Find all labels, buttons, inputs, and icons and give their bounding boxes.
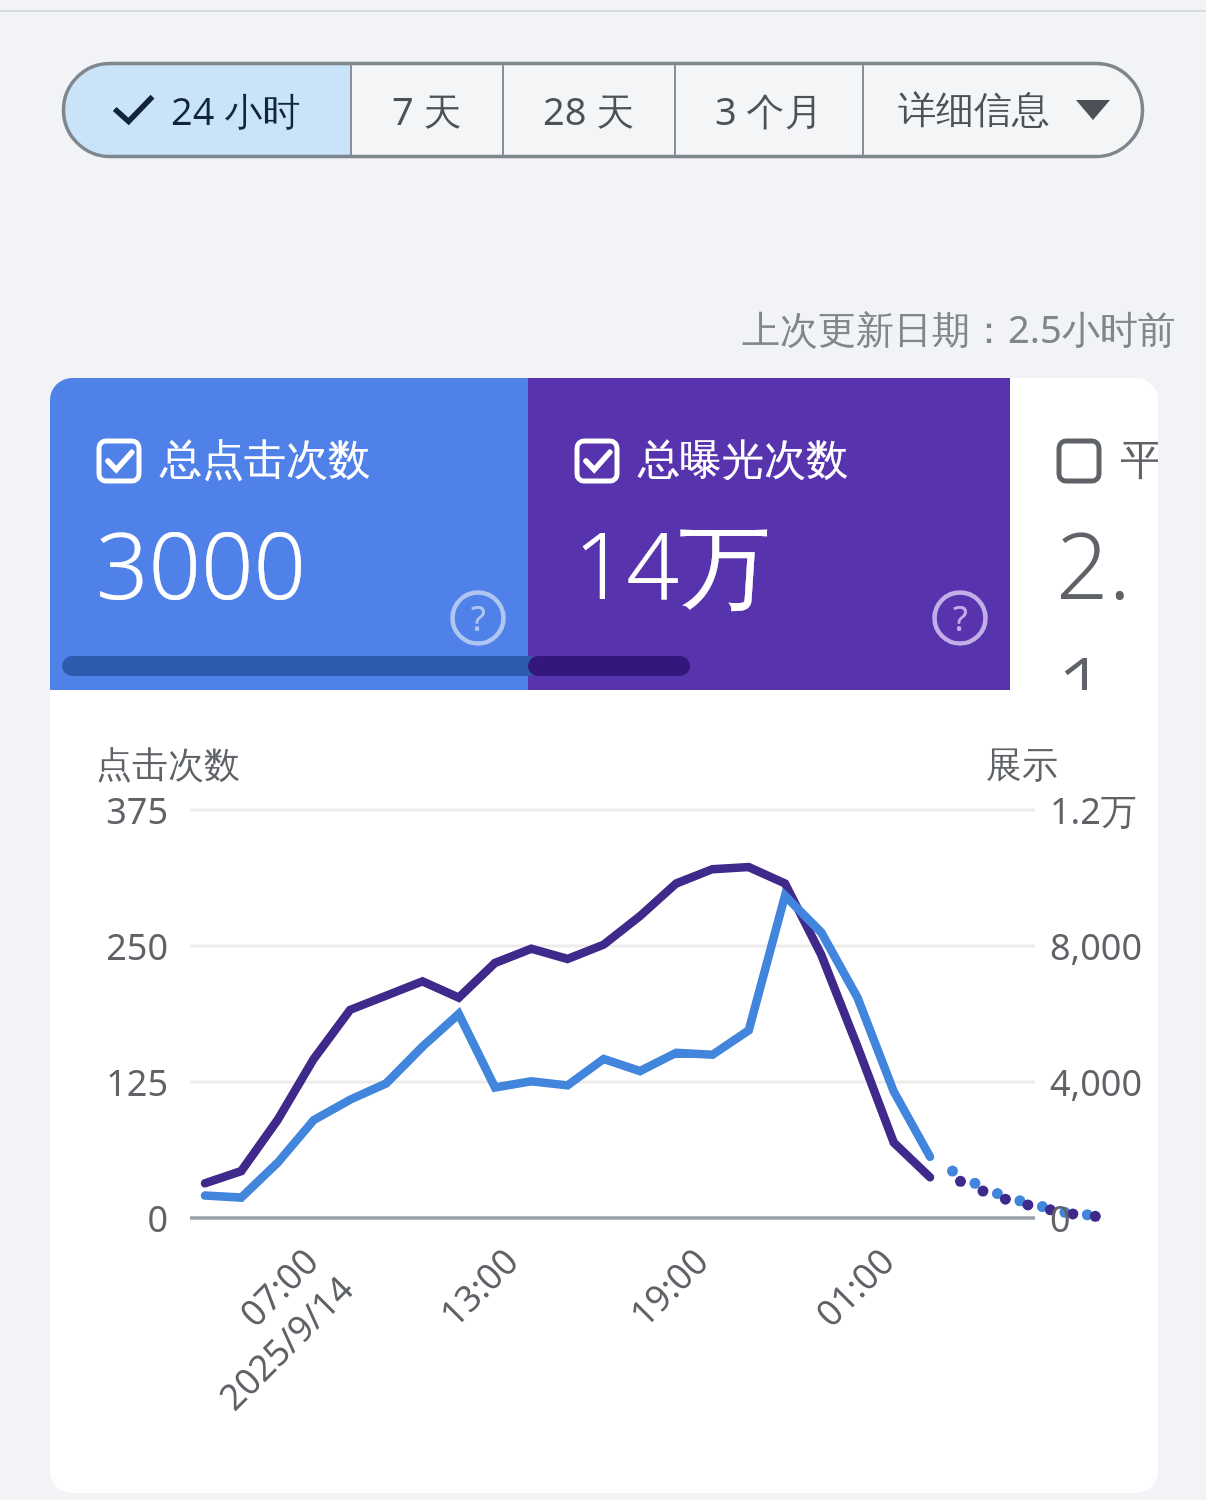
- button[interactable]: 7 天: [352, 62, 502, 158]
- staticText: 01:00: [804, 1236, 905, 1337]
- staticText: 24 小时: [171, 84, 301, 136]
- button[interactable]: 3 个月: [676, 62, 862, 158]
- button[interactable]: 帮助: [450, 590, 506, 646]
- staticText: 125: [50, 1058, 168, 1107]
- staticText: 19:00: [618, 1236, 719, 1337]
- button[interactable]: 总点击次数: [50, 378, 528, 690]
- button[interactable]: 24 小时: [62, 62, 350, 158]
- button[interactable]: 帮助: [932, 590, 988, 646]
- staticText: 14万: [574, 501, 772, 627]
- staticText: 平: [1120, 434, 1158, 487]
- staticText: 4,000: [1050, 1058, 1143, 1107]
- staticText: 250: [50, 922, 168, 971]
- staticText: 展示: [986, 742, 1058, 787]
- staticText: 7 天: [392, 84, 462, 136]
- button[interactable]: 详细信息: [864, 62, 1144, 158]
- staticText: 3 个月: [715, 84, 823, 136]
- staticText: 2.1: [1056, 501, 1158, 690]
- staticText: ?: [471, 595, 486, 641]
- button[interactable]: 28 天: [504, 62, 674, 158]
- staticText: 8,000: [1050, 922, 1143, 971]
- staticText: 点击次数: [96, 742, 240, 787]
- staticText: 3000: [96, 501, 307, 626]
- staticText: 详细信息: [898, 86, 1050, 134]
- staticText: 28 天: [543, 84, 635, 136]
- staticText: 2025/9/14: [208, 1265, 363, 1420]
- staticText: 上次更新日期：2.5小时前: [742, 302, 1176, 354]
- staticText: 1.2万: [1050, 786, 1137, 835]
- staticText: 0: [50, 1194, 168, 1243]
- button[interactable]: 平: [1010, 378, 1158, 690]
- staticText: 375: [50, 786, 168, 835]
- staticText: 总点击次数: [160, 434, 370, 487]
- button[interactable]: 总曝光次数: [528, 378, 1010, 690]
- staticText: 0: [1050, 1194, 1071, 1243]
- staticText: 总曝光次数: [638, 434, 848, 487]
- staticText: ?: [953, 595, 968, 641]
- staticText: 13:00: [428, 1236, 529, 1337]
- staticText: 07:00: [228, 1236, 329, 1337]
